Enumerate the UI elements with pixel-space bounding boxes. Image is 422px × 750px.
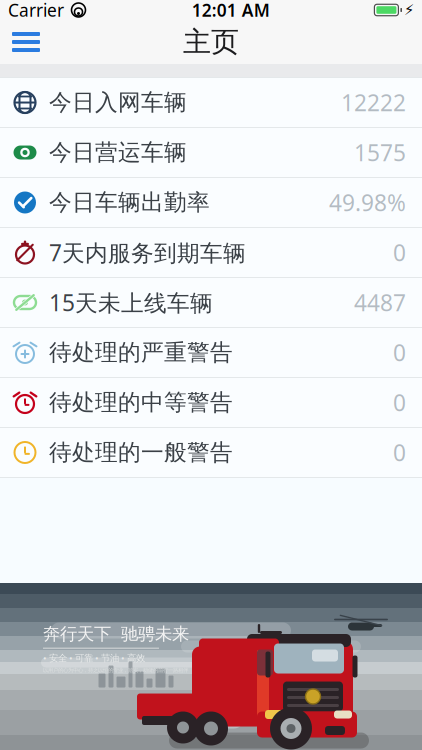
button[interactable]: 15天未上线车辆: [0, 278, 422, 328]
staticText: 49.98%: [329, 187, 406, 217]
button[interactable]: 待处理的一般警告: [0, 428, 422, 478]
button[interactable]: 今日入网车辆: [0, 78, 422, 128]
staticText: ⚡︎: [404, 2, 414, 18]
staticText: Carrier: [8, 0, 64, 21]
staticText: 主页: [183, 25, 239, 59]
staticText: 今日车辆出勤率: [49, 189, 210, 216]
staticText: 待处理的严重警告: [49, 339, 233, 366]
staticText: 0: [393, 437, 406, 467]
staticText: 12222: [341, 87, 406, 117]
button[interactable]: 待处理的严重警告: [0, 328, 422, 378]
button[interactable]: 今日营运车辆: [0, 128, 422, 178]
staticText: 1575: [354, 137, 406, 167]
staticText: 0: [393, 237, 406, 267]
staticText: 4487: [354, 287, 406, 317]
staticText: 0: [393, 387, 406, 417]
button[interactable]: 待处理的中等警告: [0, 378, 422, 428]
button[interactable]: 今日车辆出勤率: [0, 178, 422, 228]
button[interactable]: Menu: [0, 23, 52, 61]
staticText: 待处理的中等警告: [49, 389, 233, 416]
staticText: 待处理的一般警告: [49, 439, 233, 466]
staticText: 奔行天下 驰骋未来: [43, 623, 189, 645]
staticText: 7天内服务到期车辆: [49, 237, 246, 267]
staticText: • 安全 • 可靠 • 节油 • 高效: [43, 652, 145, 664]
staticText: 0: [393, 337, 406, 367]
staticText: 12:01 AM: [192, 0, 270, 21]
staticText: 今日营运车辆: [49, 139, 187, 166]
staticText: 今日入网车辆: [49, 89, 187, 116]
button[interactable]: 7天内服务到期车辆: [0, 228, 422, 278]
staticText: 15天未上线车辆: [49, 287, 213, 317]
staticText: 以用户的心为中心，持之以恒的专业，踏实，稳健的前行一路相伴: [43, 667, 188, 674]
